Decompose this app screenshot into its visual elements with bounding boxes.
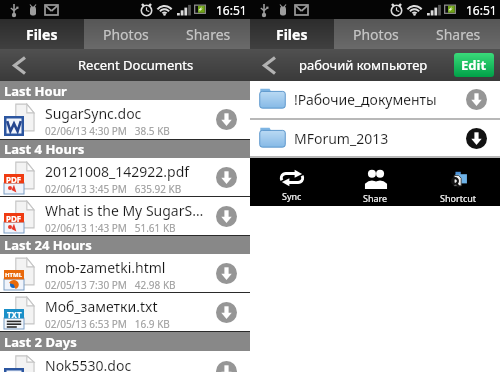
- button[interactable]: HTML: [0, 254, 250, 293]
- staticText: MForum_2013: [294, 129, 453, 148]
- staticText: PDF: [6, 213, 22, 222]
- staticText: mob-zametki.html: [45, 258, 166, 277]
- button[interactable]: Sync: [250, 158, 334, 206]
- button[interactable]: TXT: [0, 293, 250, 332]
- staticText: Photos: [103, 25, 149, 44]
- staticText: Sync: [282, 190, 302, 202]
- staticText: 02/06/13 3:45 PM 635.92 KB: [45, 182, 182, 196]
- button[interactable]: Share: [334, 158, 417, 206]
- button[interactable]: Download: [216, 302, 237, 323]
- staticText: HTML: [5, 271, 23, 279]
- button[interactable]: Download: [453, 81, 500, 118]
- button[interactable]: MForum_2013: [250, 120, 500, 156]
- button[interactable]: Photos: [334, 19, 417, 49]
- button[interactable]: PDF: [0, 197, 250, 236]
- button[interactable]: !Рабочие_документы: [250, 81, 500, 118]
- staticText: SugarSync.doc: [45, 104, 142, 123]
- staticText: Shares: [436, 25, 481, 44]
- button[interactable]: Download: [216, 206, 237, 227]
- staticText: Recent Documents: [78, 56, 194, 74]
- button[interactable]: Nok5530.doc: [0, 351, 250, 372]
- staticText: 02/06/13 4:30 PM 38.5 KB: [45, 124, 170, 138]
- button[interactable]: Photos: [84, 19, 167, 49]
- button[interactable]: Files: [250, 19, 334, 49]
- staticText: Edit: [461, 56, 487, 74]
- staticText: Last 24 Hours: [4, 236, 92, 254]
- staticText: Last Hour: [4, 82, 67, 100]
- staticText: Shortcut: [440, 192, 477, 204]
- button[interactable]: Download: [216, 109, 237, 130]
- button[interactable]: PDF: [0, 158, 250, 197]
- button[interactable]: Download: [216, 361, 237, 372]
- button[interactable]: SugarSync.doc: [0, 100, 250, 140]
- staticText: Share: [363, 192, 388, 204]
- staticText: 02/05/13 6:53 PM 16.9 KB: [45, 317, 170, 331]
- button[interactable]: Download: [453, 120, 500, 156]
- button[interactable]: Download: [216, 263, 237, 284]
- staticText: TXT: [7, 309, 22, 318]
- staticText: Photos: [353, 25, 399, 44]
- staticText: Shares: [186, 25, 231, 44]
- button[interactable]: Back: [250, 49, 288, 81]
- button[interactable]: Shares: [417, 19, 500, 49]
- button[interactable]: Shares: [167, 19, 250, 49]
- button[interactable]: Files: [0, 19, 84, 49]
- staticText: Files: [26, 25, 58, 44]
- staticText: Files: [276, 25, 308, 44]
- staticText: рабочий компьютер: [299, 56, 428, 74]
- staticText: Nok5530.doc: [45, 356, 132, 372]
- button[interactable]: Download: [216, 167, 237, 188]
- staticText: Last 4 Hours: [4, 140, 85, 158]
- staticText: 02/05/13 7:30 PM 42.98 KB: [45, 278, 176, 292]
- staticText: What is the My SugarSync Manager and wha…: [45, 201, 207, 220]
- staticText: PDF: [6, 174, 22, 183]
- staticText: Last 2 Days: [4, 333, 77, 351]
- staticText: 02/06/13 1:43 PM 51.61 KB: [45, 221, 176, 235]
- staticText: Моб_заметки.txt: [45, 297, 158, 316]
- button[interactable]: Back: [0, 49, 38, 81]
- button[interactable]: Shortcut: [417, 158, 500, 206]
- staticText: 16:51: [216, 2, 247, 18]
- staticText: 20121008_142922.pdf: [45, 162, 190, 181]
- staticText: 16:51: [466, 2, 497, 18]
- staticText: !Рабочие_документы: [294, 90, 453, 109]
- button[interactable]: Edit: [454, 53, 494, 77]
